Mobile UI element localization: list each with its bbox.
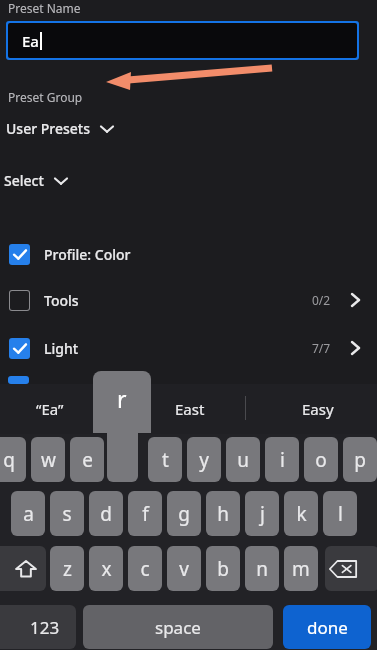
button[interactable]: l: [323, 491, 357, 536]
staticText: m: [292, 556, 310, 582]
button[interactable]: done: [283, 605, 371, 649]
button[interactable]: “Ea”: [0, 384, 100, 434]
button[interactable]: z: [50, 546, 84, 591]
staticText: 7/7: [312, 340, 331, 356]
staticText: w: [41, 447, 56, 473]
button[interactable]: b: [206, 546, 240, 591]
button[interactable]: s: [50, 491, 84, 536]
staticText: k: [296, 501, 307, 527]
button[interactable]: x: [89, 546, 123, 591]
button[interactable]: u: [226, 437, 260, 482]
staticText: j: [260, 501, 265, 527]
button[interactable]: d: [89, 491, 123, 536]
staticText: Light: [44, 339, 79, 358]
staticText: space: [155, 616, 201, 639]
staticText: e: [82, 447, 93, 473]
button[interactable]: Shift: [0, 546, 46, 591]
button[interactable]: p: [343, 437, 377, 482]
staticText: f: [142, 501, 149, 527]
button[interactable]: space: [83, 605, 273, 649]
staticText: Preset Group: [8, 89, 83, 105]
staticText: u: [237, 447, 249, 473]
button[interactable]: Ea: [6, 21, 359, 60]
staticText: b: [217, 556, 229, 582]
staticText: v: [179, 556, 189, 582]
staticText: h: [217, 501, 229, 527]
staticText: c: [140, 556, 150, 582]
button[interactable]: a: [11, 491, 45, 536]
staticText: x: [101, 556, 112, 582]
staticText: a: [23, 501, 34, 527]
button[interactable]: Tools: [0, 280, 377, 320]
staticText: z: [63, 556, 72, 582]
button[interactable]: Light: [0, 328, 377, 368]
staticText: Select: [4, 171, 44, 190]
staticText: Preset Name: [8, 0, 81, 16]
button[interactable]: q: [0, 437, 26, 482]
button[interactable]: c: [128, 546, 162, 591]
button[interactable]: Backspace: [325, 546, 377, 591]
staticText: done: [307, 616, 348, 639]
staticText: Tools: [44, 291, 79, 310]
button[interactable]: Profile: Color: [0, 234, 377, 274]
staticText: q: [3, 447, 15, 473]
staticText: Easy: [302, 399, 334, 419]
button[interactable]: m: [284, 546, 318, 591]
staticText: t: [162, 447, 169, 473]
button[interactable]: r: [93, 371, 151, 425]
staticText: p: [354, 447, 366, 473]
button[interactable]: Easy: [268, 384, 368, 434]
button[interactable]: Select: [4, 171, 68, 190]
button[interactable]: o: [304, 437, 338, 482]
staticText: n: [256, 556, 268, 582]
button[interactable]: j: [245, 491, 279, 536]
button[interactable]: User Presets: [6, 119, 114, 138]
button[interactable]: East: [140, 384, 240, 434]
button[interactable]: i: [265, 437, 299, 482]
staticText: Ea: [22, 31, 39, 51]
button[interactable]: g: [167, 491, 201, 536]
staticText: East: [175, 399, 205, 419]
staticText: y: [199, 447, 209, 473]
button[interactable]: 123: [0, 605, 76, 649]
staticText: User Presets: [6, 119, 90, 138]
staticText: g: [178, 501, 190, 527]
button[interactable]: n: [245, 546, 279, 591]
staticText: r: [117, 383, 127, 414]
staticText: s: [62, 501, 72, 527]
button[interactable]: h: [206, 491, 240, 536]
button[interactable]: t: [148, 437, 182, 482]
staticText: “Ea”: [36, 399, 64, 419]
button[interactable]: y: [187, 437, 221, 482]
staticText: d: [100, 501, 112, 527]
staticText: Profile: Color: [44, 245, 131, 264]
staticText: o: [315, 447, 327, 473]
button[interactable]: k: [284, 491, 318, 536]
staticText: i: [280, 447, 285, 473]
button[interactable]: f: [128, 491, 162, 536]
button[interactable]: e: [70, 437, 104, 482]
button[interactable]: w: [31, 437, 65, 482]
staticText: l: [338, 501, 343, 527]
button[interactable]: v: [167, 546, 201, 591]
staticText: 0/2: [312, 292, 331, 308]
staticText: 123: [30, 616, 60, 639]
